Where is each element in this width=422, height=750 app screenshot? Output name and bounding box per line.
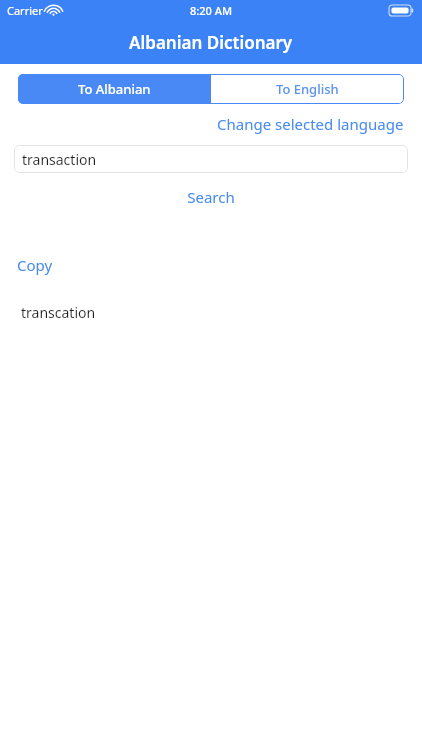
button[interactable]: Search xyxy=(179,184,243,210)
staticText: Albanian Dictionary xyxy=(129,31,293,54)
staticText: Change selected language xyxy=(217,114,404,134)
button[interactable]: Change selected language xyxy=(215,112,406,136)
staticText: To Albanian xyxy=(78,80,151,98)
button[interactable]: To Albanian xyxy=(18,74,211,104)
staticText: 8:20 AM xyxy=(190,3,233,18)
staticText: Search xyxy=(187,187,235,207)
other: Battery full xyxy=(389,5,414,16)
staticText: Copy xyxy=(17,255,53,275)
button[interactable]: transaction xyxy=(14,145,408,173)
staticText: transcation xyxy=(21,303,96,322)
staticText: transaction xyxy=(22,150,97,169)
button[interactable]: To English xyxy=(211,74,404,104)
other: Wi-Fi signal xyxy=(47,6,60,16)
staticText: Carrier xyxy=(7,3,43,18)
button[interactable]: Copy xyxy=(14,252,56,278)
staticText: To English xyxy=(276,80,339,98)
